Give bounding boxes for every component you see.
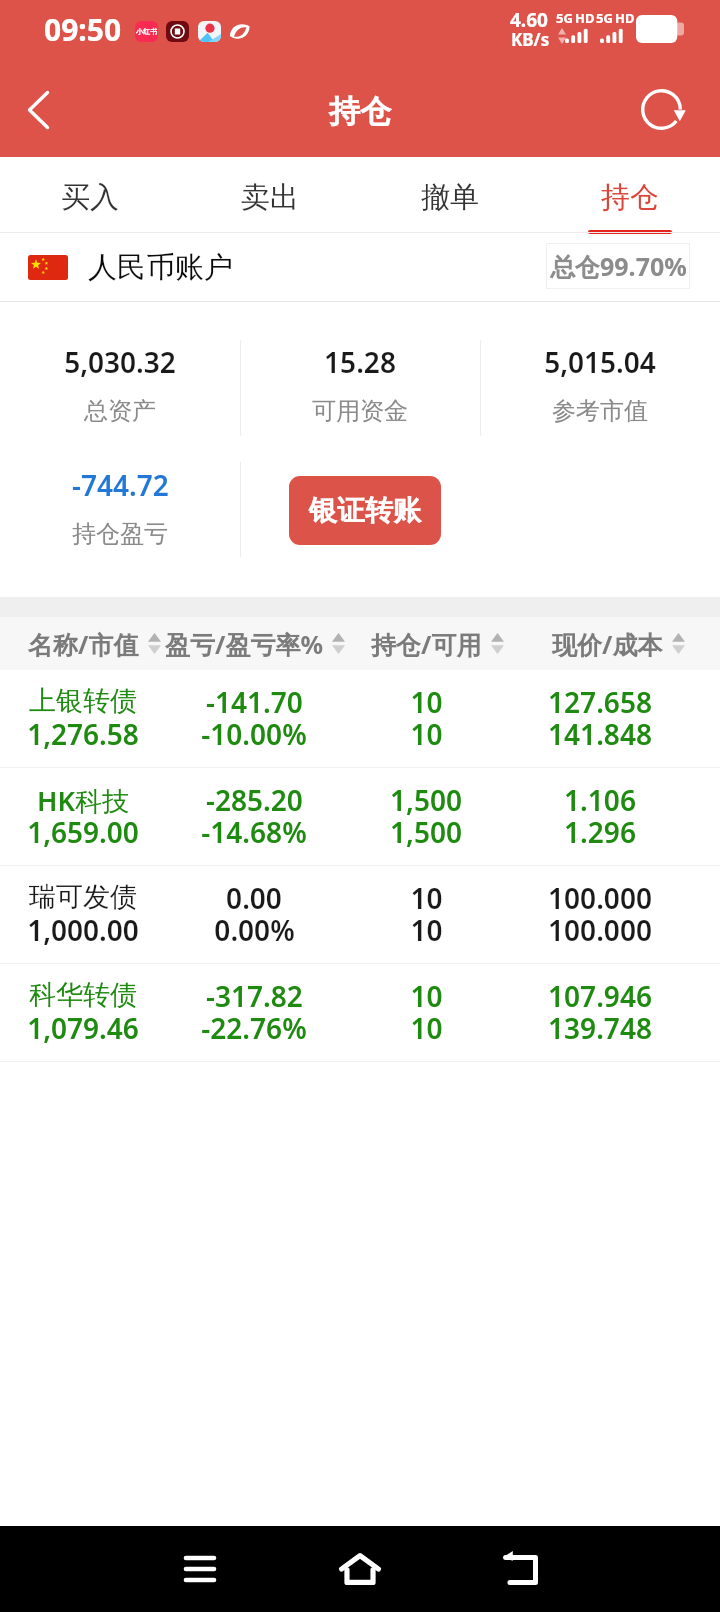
staticText: -10.00% [201, 715, 307, 753]
button[interactable]: 银证转账 [289, 476, 441, 545]
staticText: 10 [410, 911, 443, 949]
staticText: 科华转债 [29, 978, 137, 1012]
staticText: 总仓99.70% [550, 249, 687, 283]
staticText: 1,079.46 [27, 1009, 139, 1047]
staticText: 100.000 [548, 879, 652, 917]
staticText: 1.106 [564, 781, 636, 819]
staticText: 5G [596, 9, 613, 27]
button[interactable]: 持仓 [540, 157, 720, 233]
staticText: 1,276.58 [27, 715, 139, 753]
button[interactable]: 名称/市值 [28, 617, 161, 670]
button[interactable]: 上银转债 [0, 670, 720, 767]
button[interactable]: Recent apps [160, 1534, 240, 1604]
button[interactable]: 瑞可发债 [0, 866, 720, 963]
staticText: 盈亏/盈亏率% [165, 627, 323, 661]
staticText: 5,030.32 [64, 343, 176, 381]
button[interactable]: HK科技 [0, 768, 720, 865]
staticText: 1,500 [390, 781, 462, 819]
staticText: 持仓盈亏 [72, 519, 168, 549]
staticText: 1.296 [564, 813, 636, 851]
button[interactable]: Home [320, 1534, 400, 1604]
button[interactable]: Back [480, 1534, 560, 1604]
staticText: 瑞可发债 [29, 880, 137, 914]
staticText: -744.72 [72, 466, 169, 504]
button[interactable]: 撤单 [360, 157, 540, 233]
staticText: 15.28 [324, 343, 396, 381]
button[interactable]: 总仓99.70% [546, 243, 690, 289]
staticText: 0.00% [214, 911, 295, 949]
staticText: 10 [410, 1009, 443, 1047]
staticText: 买入 [61, 179, 119, 216]
staticText: HK科技 [37, 782, 129, 819]
staticText: 持仓 [601, 179, 659, 216]
staticText: 参考市值 [552, 396, 648, 426]
button[interactable]: 盈亏/盈亏率% [165, 617, 345, 670]
staticText: 可用资金 [312, 396, 408, 426]
staticText: 10 [410, 879, 443, 917]
staticText: 小红书 [136, 27, 157, 36]
button[interactable]: Refresh [632, 80, 690, 138]
staticText: 人民币账户 [88, 249, 233, 286]
button[interactable]: Back [8, 80, 66, 138]
button[interactable]: 科华转债 [0, 964, 720, 1061]
staticText: -141.70 [206, 683, 303, 721]
staticText: KB/s [511, 28, 550, 51]
staticText: 1,659.00 [27, 813, 139, 851]
staticText: 10 [410, 977, 443, 1015]
staticText: 139.748 [548, 1009, 652, 1047]
staticText: -317.82 [206, 977, 303, 1015]
staticText: 10 [410, 683, 443, 721]
staticText: HD [615, 9, 635, 27]
staticText: 0.00 [226, 879, 282, 917]
staticText: 撤单 [421, 179, 479, 216]
button[interactable]: 买入 [0, 157, 180, 233]
staticText: 5,015.04 [544, 343, 656, 381]
staticText: 127.658 [548, 683, 652, 721]
staticText: 141.848 [548, 715, 652, 753]
staticText: 持仓 [329, 92, 391, 131]
staticText: 09:50 [44, 9, 122, 50]
staticText: -22.76% [201, 1009, 307, 1047]
staticText: HD [575, 9, 595, 27]
staticText: 卖出 [241, 179, 299, 216]
staticText: 5G [556, 9, 573, 27]
staticText: 4.60 [510, 7, 548, 33]
button[interactable]: 卖出 [180, 157, 360, 233]
staticText: 名称/市值 [28, 627, 139, 661]
staticText: -285.20 [206, 781, 303, 819]
button[interactable]: 持仓/可用 [371, 617, 504, 670]
staticText: 1,500 [390, 813, 462, 851]
staticText: 1,000.00 [27, 911, 139, 949]
staticText: 银证转账 [309, 493, 421, 528]
staticText: 上银转债 [29, 684, 137, 718]
staticText: 107.946 [548, 977, 652, 1015]
staticText: 持仓/可用 [371, 627, 482, 661]
button[interactable]: 现价/成本 [552, 617, 685, 670]
staticText: -14.68% [201, 813, 307, 851]
staticText: 现价/成本 [552, 627, 663, 661]
staticText: 总资产 [84, 396, 156, 426]
staticText: 10 [410, 715, 443, 753]
staticText: 100.000 [548, 911, 652, 949]
button[interactable]: 人民币账户 [0, 233, 720, 302]
